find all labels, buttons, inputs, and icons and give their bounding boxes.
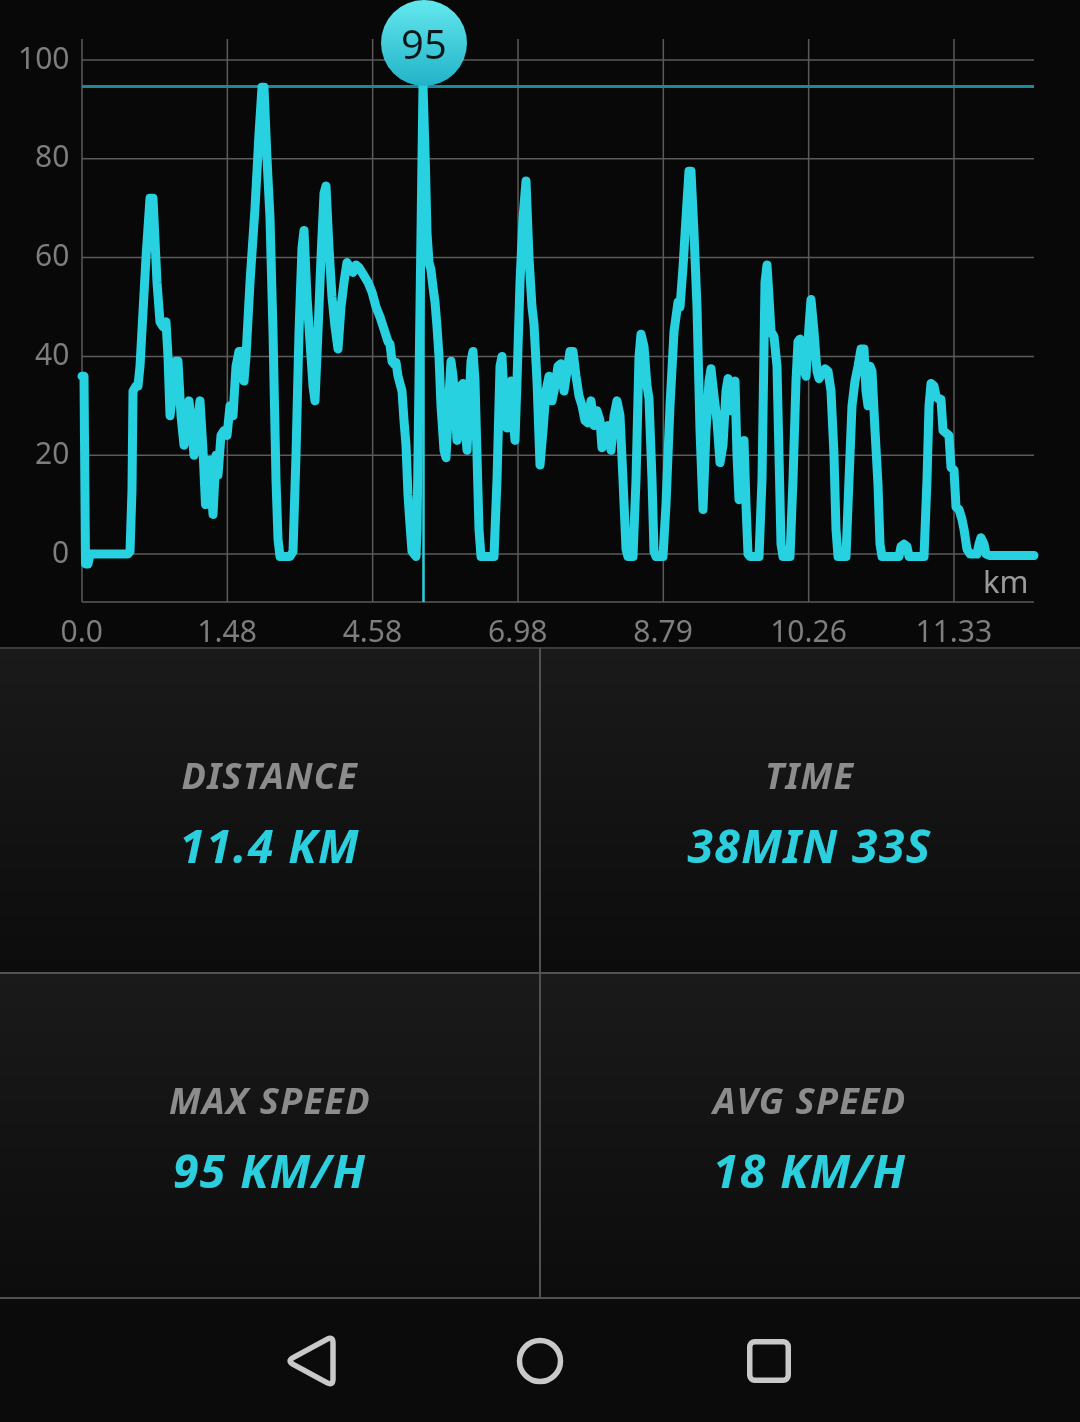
button[interactable] [540,648,1080,973]
button[interactable] [540,973,1080,1298]
button[interactable] [0,648,540,973]
button[interactable] [709,1300,829,1421]
button[interactable] [250,1300,370,1421]
button[interactable] [0,973,540,1298]
button[interactable] [480,1300,600,1421]
